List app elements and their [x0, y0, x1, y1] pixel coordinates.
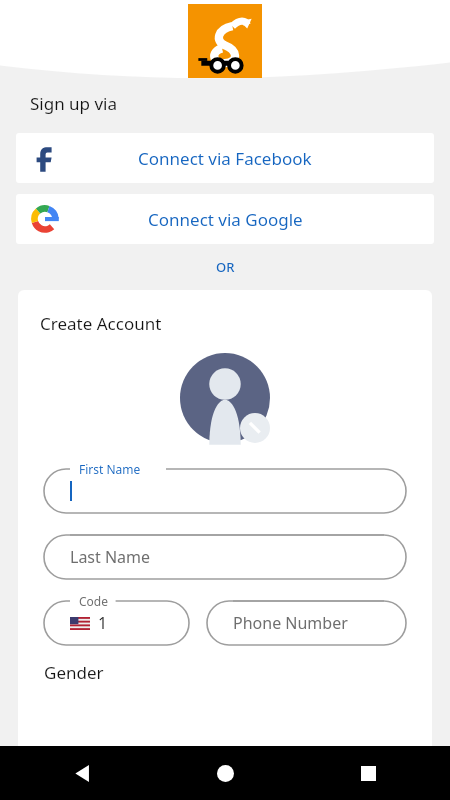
button[interactable]: Connect via Facebook	[16, 133, 434, 183]
staticText: 1	[98, 612, 108, 634]
button[interactable]: Last Name	[44, 527, 406, 579]
staticText: OR	[216, 258, 235, 276]
button[interactable]: Home	[205, 753, 245, 793]
button[interactable]: Phone Number	[207, 593, 406, 645]
staticText: Connect via Facebook	[138, 147, 312, 170]
button[interactable]: Connect via Google	[16, 194, 434, 244]
staticText: First Name	[79, 461, 141, 477]
staticText: Phone Number	[233, 612, 348, 634]
button[interactable]: Back	[62, 753, 102, 793]
staticText: Last Name	[70, 546, 151, 568]
staticText: Gender	[44, 661, 104, 684]
button[interactable]: Code	[44, 593, 189, 645]
staticText: Connect via Google	[148, 208, 303, 231]
button[interactable]: Recent apps	[348, 753, 388, 793]
staticText: Create Account	[40, 312, 162, 335]
staticText: Code	[79, 593, 108, 609]
button[interactable]: First Name	[44, 461, 406, 513]
button[interactable]: Change profile photo	[180, 353, 270, 443]
staticText: Sign up via	[30, 92, 118, 115]
